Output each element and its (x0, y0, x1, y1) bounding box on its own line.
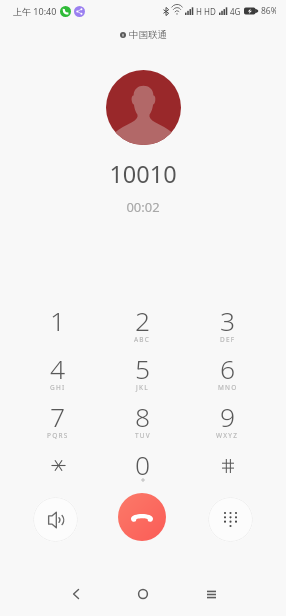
staticText: 4 (50, 351, 66, 387)
staticText: MNO (218, 383, 238, 392)
button[interactable]: 5 (100, 348, 185, 396)
staticText: 6 (220, 351, 236, 387)
staticText: DEF (220, 335, 236, 344)
staticText: 00:02 (0, 198, 286, 216)
staticText: TUV (135, 431, 151, 440)
button[interactable]: 3 (185, 300, 270, 348)
button[interactable]: 7 (16, 396, 100, 444)
staticText: PQRS (47, 431, 69, 440)
button[interactable]: 4 (16, 348, 100, 396)
staticText: 5 (135, 351, 151, 387)
staticText: H (196, 6, 202, 17)
button[interactable]: Back (60, 578, 92, 610)
button[interactable]: 2 (100, 300, 185, 348)
staticText: 4G (230, 6, 241, 17)
button[interactable]: Speaker (33, 497, 78, 542)
button[interactable] (185, 444, 270, 492)
staticText: 3 (220, 303, 236, 339)
button[interactable]: Recents (195, 578, 227, 610)
button[interactable]: 0 (100, 444, 185, 492)
staticText: JKL (136, 383, 149, 392)
staticText: 7 (50, 399, 66, 435)
button[interactable]: Home (127, 578, 159, 610)
staticText: 86% (261, 5, 276, 17)
staticText: 2 (135, 303, 151, 339)
staticText: HD (204, 6, 216, 17)
button[interactable]: 1 (16, 300, 100, 348)
staticText: 中国联通 (129, 29, 167, 41)
staticText: 0 (135, 447, 151, 483)
staticText: 上午 10:40 (13, 5, 57, 17)
button[interactable]: 9 (185, 396, 270, 444)
staticText: GHI (50, 383, 66, 392)
button[interactable]: Dialpad (208, 497, 253, 542)
staticText: 9 (220, 399, 236, 435)
button[interactable] (16, 444, 100, 492)
button[interactable]: 8 (100, 396, 185, 444)
staticText: WXYZ (216, 431, 239, 440)
staticText: ABC (134, 335, 151, 344)
button[interactable]: End call (118, 493, 166, 541)
button[interactable]: 6 (185, 348, 270, 396)
staticText: 1 (50, 303, 66, 339)
staticText: 10010 (0, 158, 286, 190)
staticText: 8 (135, 399, 151, 435)
